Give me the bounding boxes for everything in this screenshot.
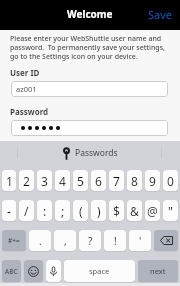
button[interactable]: Dictation — [46, 260, 61, 282]
button[interactable]: 8 — [127, 170, 142, 191]
staticText: Please enter your WebShuttle user name a… — [10, 34, 165, 61]
button[interactable]: 3 — [37, 170, 52, 191]
staticText: 2 — [23, 173, 30, 189]
staticText: #+= — [8, 236, 20, 245]
button[interactable]: 0 — [163, 170, 178, 191]
button[interactable]: ( — [73, 200, 88, 221]
staticText: ? — [88, 234, 93, 248]
staticText: & — [130, 203, 139, 219]
staticText: 6 — [95, 173, 102, 189]
button[interactable]: " — [163, 200, 178, 221]
button[interactable]: ) — [91, 200, 106, 221]
staticText: ( — [79, 203, 83, 219]
staticText: 4 — [59, 173, 66, 189]
staticText: Save — [148, 7, 173, 22]
staticText: ' — [139, 234, 142, 248]
staticText: az001 — [16, 84, 37, 94]
button[interactable]: 7 — [109, 170, 124, 191]
staticText: " — [168, 203, 173, 219]
button[interactable]: & — [127, 200, 142, 221]
staticText: ! — [114, 234, 117, 248]
button[interactable]: ; — [55, 200, 70, 221]
staticText: 3 — [41, 173, 48, 189]
button[interactable]: Delete — [154, 230, 178, 251]
button[interactable]: 2 — [19, 170, 34, 191]
staticText: ABC — [5, 267, 18, 276]
button[interactable]: ' — [129, 230, 151, 251]
button[interactable]: Welcome — [67, 7, 113, 21]
staticText: : — [43, 203, 47, 219]
staticText: , — [64, 234, 67, 248]
button[interactable]: Passwords — [63, 146, 118, 160]
button[interactable]: ABC — [2, 260, 21, 282]
staticText: ) — [97, 203, 101, 219]
button[interactable]: . — [29, 230, 51, 251]
staticText: 9 — [149, 173, 156, 189]
button[interactable]: - — [2, 200, 16, 221]
staticText: 1 — [6, 173, 13, 189]
staticText: 0 — [167, 173, 174, 189]
button[interactable]: #+= — [2, 230, 26, 251]
button[interactable]: ! — [104, 230, 126, 251]
button[interactable]: , — [54, 230, 76, 251]
button[interactable]: az001 — [11, 81, 168, 97]
button[interactable]: 6 — [91, 170, 106, 191]
button[interactable]: 5 — [73, 170, 88, 191]
staticText: Welcome — [67, 7, 113, 21]
staticText: Passwords — [75, 147, 118, 159]
button[interactable]: ? — [79, 230, 101, 251]
staticText: $ — [113, 203, 120, 219]
staticText: . — [39, 234, 42, 248]
staticText: @ — [147, 203, 158, 219]
staticText: 5 — [77, 173, 84, 189]
staticText: 7 — [113, 173, 120, 189]
button[interactable]: next — [138, 260, 178, 282]
button[interactable]: $ — [109, 200, 124, 221]
staticText: / — [24, 203, 29, 219]
button[interactable]: 4 — [55, 170, 70, 191]
button[interactable]: 9 — [145, 170, 160, 191]
staticText: Password — [10, 106, 49, 117]
button[interactable]: Save — [148, 7, 180, 22]
button[interactable]: @ — [145, 200, 160, 221]
button[interactable]: Emoji — [24, 260, 43, 282]
staticText: space — [89, 266, 110, 276]
staticText: User ID — [10, 67, 40, 78]
button[interactable]: space — [64, 260, 135, 282]
button[interactable]: / — [19, 200, 34, 221]
button[interactable] — [11, 120, 168, 136]
staticText: - — [7, 203, 11, 219]
staticText: ; — [61, 203, 65, 219]
button[interactable]: 1 — [2, 170, 16, 191]
staticText: 8 — [131, 173, 138, 189]
staticText: next — [150, 266, 166, 276]
button[interactable]: : — [37, 200, 52, 221]
